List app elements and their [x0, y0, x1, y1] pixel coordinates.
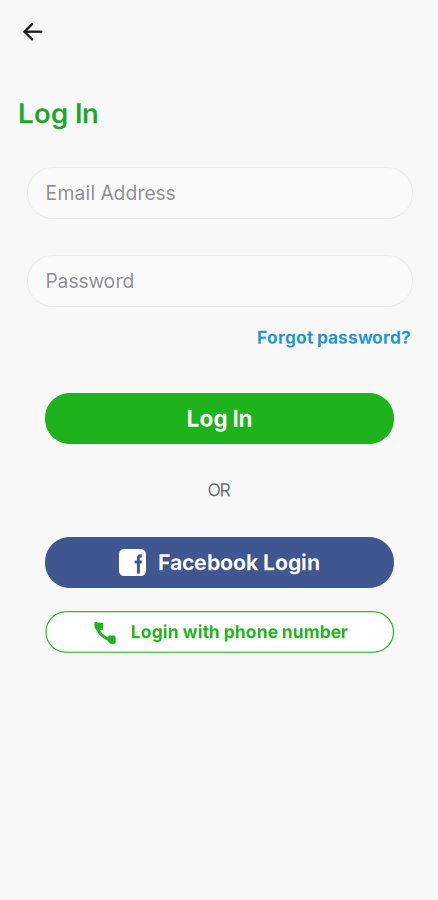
button[interactable]: Back: [11, 10, 55, 54]
staticText: Password: [45, 269, 134, 293]
staticText: Login with phone number: [131, 621, 348, 642]
staticText: OR: [208, 479, 230, 500]
button[interactable]: Login with phone number: [46, 612, 393, 652]
staticText: Log In: [18, 96, 99, 130]
staticText: Log In: [186, 405, 252, 432]
button[interactable]: Forgot password?: [253, 322, 415, 353]
button[interactable]: Facebook Login: [45, 537, 394, 588]
staticText: Email Address: [45, 181, 175, 205]
staticText: Facebook Login: [158, 550, 320, 575]
button[interactable]: Log In: [45, 393, 394, 444]
staticText: Forgot password?: [257, 327, 411, 348]
